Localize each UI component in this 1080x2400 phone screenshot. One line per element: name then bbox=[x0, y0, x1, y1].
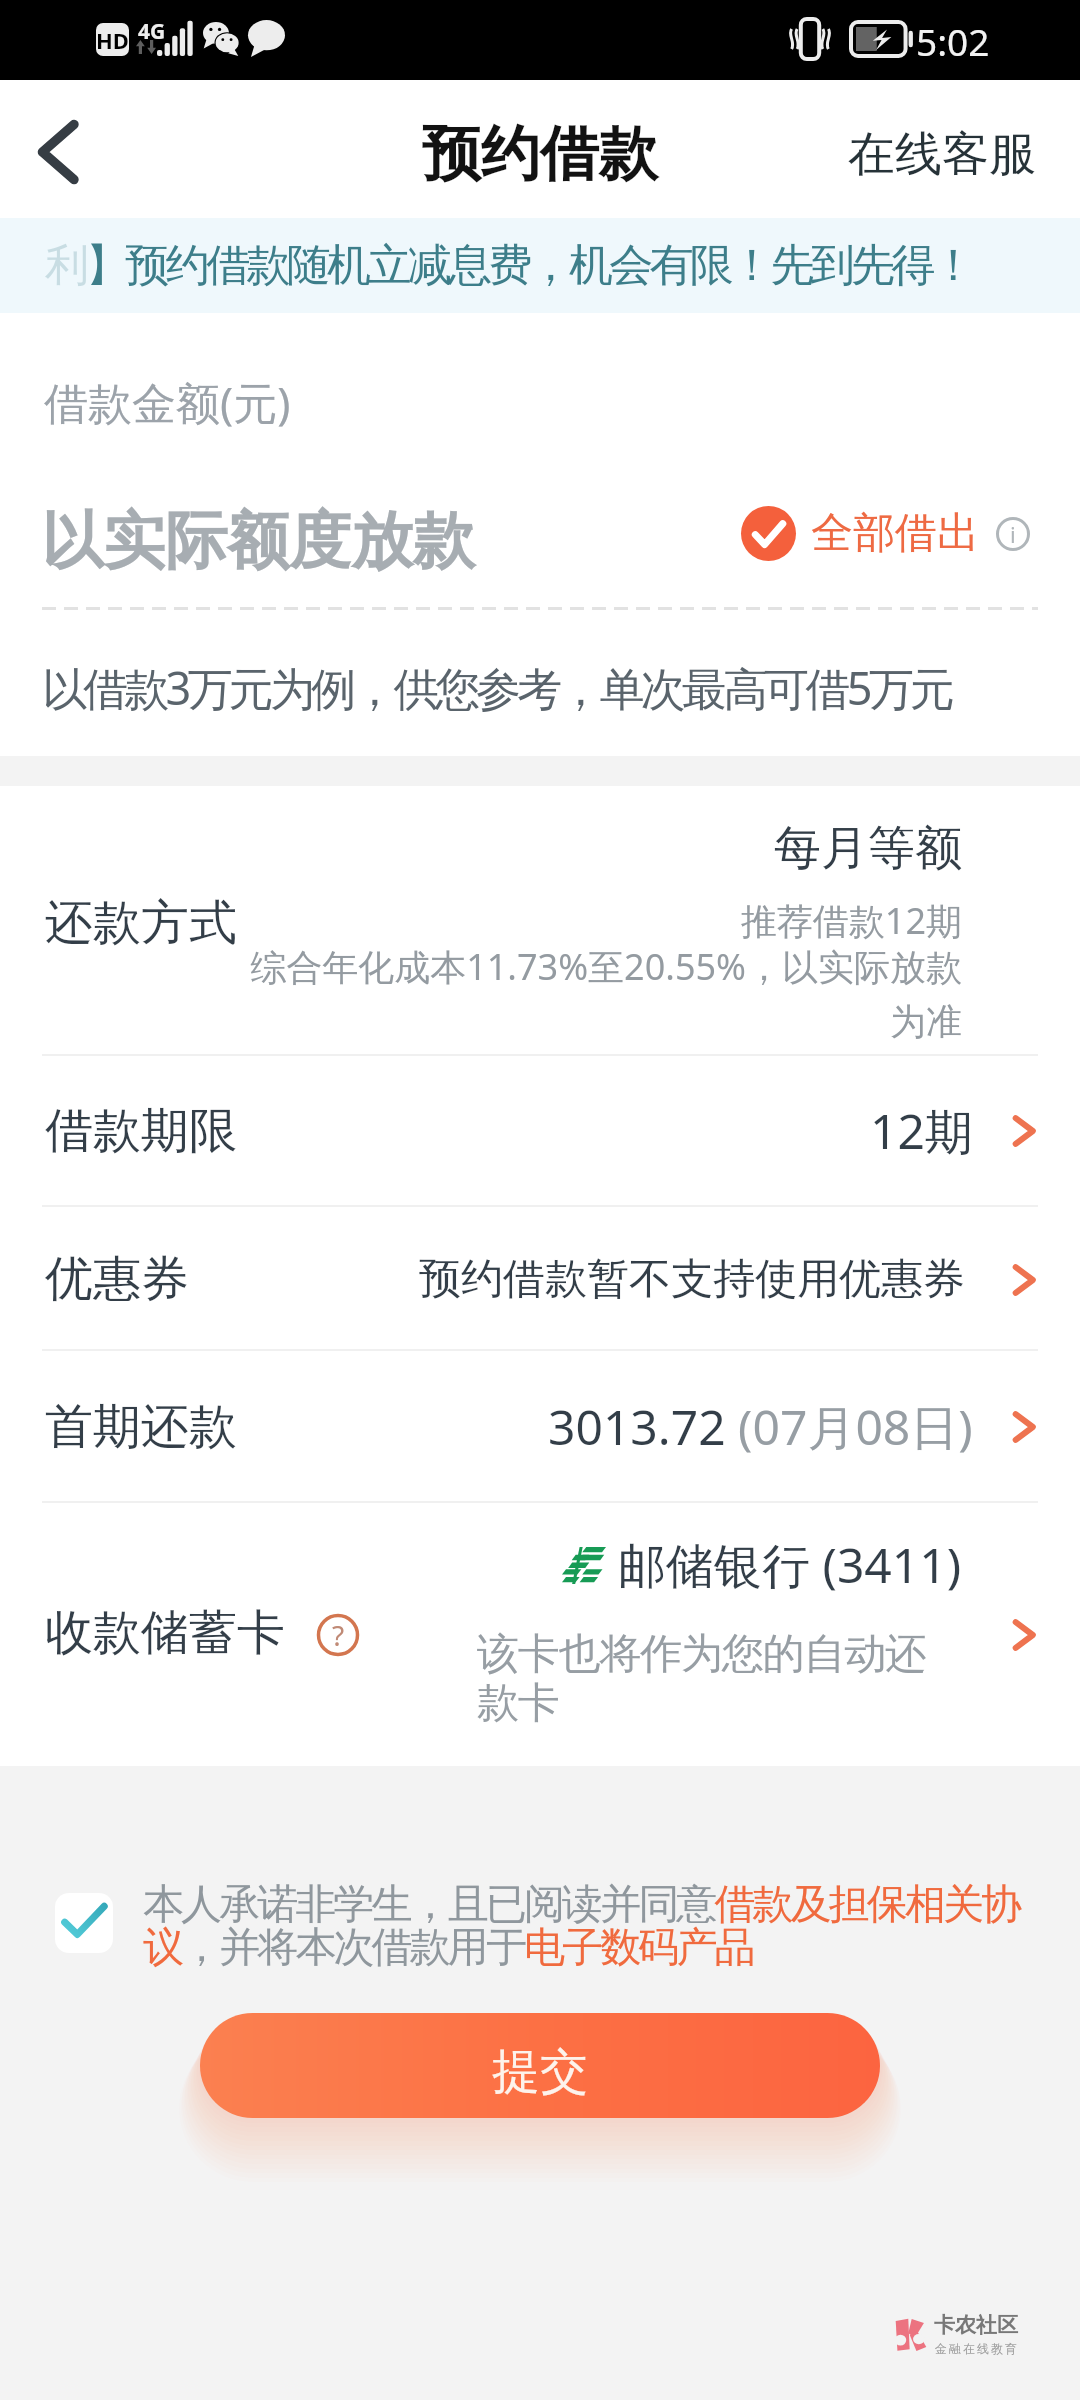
button[interactable]: Information about borrowing the full amo… bbox=[995, 516, 1031, 552]
button[interactable]: 首期还款 bbox=[0, 1351, 1080, 1503]
staticText: 3013.72 (07月08日) bbox=[548, 1394, 973, 1460]
staticText: ? bbox=[332, 1616, 345, 1654]
button[interactable]: 优惠券 bbox=[0, 1207, 1080, 1351]
button[interactable]: Agreement checkbox bbox=[55, 1893, 113, 1953]
button[interactable]: Back bbox=[10, 89, 110, 209]
staticText: 还款方式 bbox=[45, 893, 237, 953]
staticText: 推荐借款12期 bbox=[562, 896, 962, 945]
button[interactable]: 收款储蓄卡 bbox=[0, 1503, 1080, 1766]
staticText: 邮储银行 (3411) bbox=[618, 1532, 962, 1598]
staticText: 4G bbox=[138, 17, 166, 46]
staticText: 预约借款暂不支持使用优惠券 bbox=[419, 1253, 965, 1306]
staticText: 该卡也将作为您的自动还款卡 bbox=[477, 1628, 929, 1729]
staticText: 卡农社区 bbox=[934, 2312, 1018, 2338]
staticText: 优惠券 bbox=[45, 1249, 189, 1309]
button[interactable]: 借款期限 bbox=[0, 1055, 1080, 1207]
staticText: 以借款3万元为例，供您参考，单次最高可借5万元 bbox=[42, 657, 952, 718]
staticText: 全部借出 bbox=[811, 507, 979, 560]
staticText: 金融在线教育 bbox=[934, 2341, 1018, 2356]
button[interactable]: 全部借出 bbox=[741, 506, 979, 561]
staticText: 本人承诺非学生，且已阅读并同意借款及担保相关协议，并将本次借款用于电子数码产品 bbox=[143, 1879, 1027, 1973]
staticText: HD bbox=[96, 25, 129, 55]
staticText: 预约借款 bbox=[422, 117, 658, 191]
staticText: 综合年化成本11.73%至20.55%，以实际放款为准 bbox=[250, 942, 962, 1045]
staticText: 每月等额 bbox=[774, 819, 962, 878]
staticText: 借款期限 bbox=[45, 1101, 237, 1161]
staticText: 5:02 bbox=[916, 16, 990, 66]
staticText: 借款金额(元) bbox=[44, 372, 291, 432]
staticText: 收款储蓄卡 bbox=[45, 1603, 285, 1663]
staticText: 在线客服 bbox=[848, 125, 1036, 184]
staticText: 利】预约借款随机立减息费，机会有限！先到先得！ bbox=[45, 238, 972, 293]
staticText: 12期 bbox=[870, 1098, 973, 1164]
button[interactable]: Help about receiving debit card bbox=[316, 1613, 360, 1657]
staticText: i bbox=[1010, 519, 1016, 549]
staticText: 以实际额度放款 bbox=[41, 502, 475, 580]
staticText: 首期还款 bbox=[45, 1397, 237, 1457]
button[interactable]: 提交 bbox=[200, 2013, 880, 2118]
staticText: 提交 bbox=[492, 2042, 588, 2102]
button[interactable]: 在线客服 bbox=[838, 111, 1046, 198]
